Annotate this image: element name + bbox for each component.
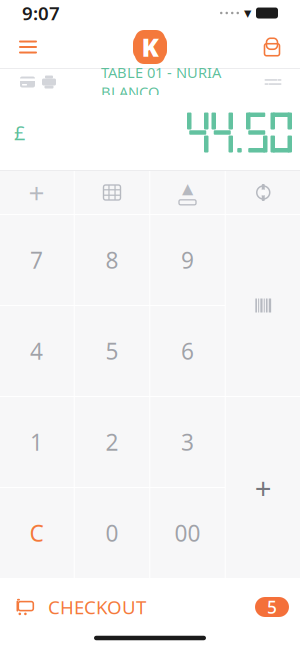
button[interactable]: CHECKOUT <box>0 587 300 627</box>
staticText: ▾ <box>244 5 251 21</box>
staticText: CHECKOUT <box>48 595 146 619</box>
staticText: 9 <box>181 245 194 275</box>
button[interactable]: 2 <box>75 397 149 487</box>
button[interactable]: 5 <box>75 306 149 396</box>
staticText: TABLE 01 - NURIA BLANCO <box>101 62 221 101</box>
staticText: 2 <box>105 427 118 457</box>
button[interactable]: Add item <box>0 171 74 214</box>
button[interactable]: Payment and print <box>10 69 66 95</box>
staticText: 3 <box>181 427 194 457</box>
button[interactable]: 6 <box>150 306 225 396</box>
button[interactable]: 7 <box>0 215 74 305</box>
staticText: + <box>255 468 272 507</box>
button[interactable]: Open drawer <box>150 171 225 214</box>
button[interactable]: C <box>0 488 74 578</box>
button[interactable]: 0 <box>75 488 149 578</box>
staticText: 0 <box>105 518 118 548</box>
staticText: 8 <box>105 245 118 275</box>
staticText: 5 <box>105 336 118 366</box>
staticText: 6 <box>181 336 194 366</box>
button[interactable]: Transfer table <box>256 69 290 95</box>
button[interactable]: 00 <box>150 488 225 578</box>
button[interactable]: Lock <box>250 26 294 68</box>
staticText: C <box>29 518 43 548</box>
button[interactable]: 4 <box>0 306 74 396</box>
button[interactable]: Settings <box>226 171 300 214</box>
button[interactable]: Menu <box>6 26 50 68</box>
staticText: + <box>28 174 44 211</box>
staticText: £ <box>14 119 25 146</box>
button[interactable]: Add <box>226 397 300 578</box>
button[interactable]: Scan barcode <box>226 215 300 396</box>
button[interactable]: TABLE 01 - NURIA BLANCO <box>101 62 221 101</box>
staticText: 7 <box>30 245 43 275</box>
button[interactable]: 3 <box>150 397 225 487</box>
staticText: ▲ <box>182 180 193 197</box>
staticText: 1 <box>30 427 43 457</box>
staticText: 00 <box>174 518 200 548</box>
button[interactable]: 9 <box>150 215 225 305</box>
button[interactable]: 8 <box>75 215 149 305</box>
staticText: 4 <box>30 336 43 366</box>
button[interactable]: 1 <box>0 397 74 487</box>
button[interactable]: Products grid <box>75 171 149 214</box>
staticText: 9:07 <box>22 1 60 25</box>
staticText: 5 <box>267 595 277 618</box>
staticText: K <box>141 30 158 64</box>
